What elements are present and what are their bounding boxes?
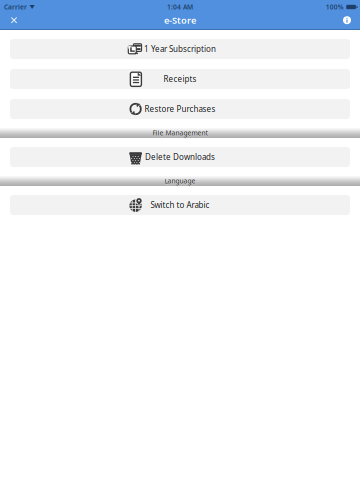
staticText: Language [164, 177, 195, 186]
staticText: Carrier [4, 3, 27, 11]
staticText: 1 Year Subscription [144, 44, 216, 54]
button[interactable]: 1 Year Subscription [10, 39, 350, 59]
staticText: Restore Purchases [144, 104, 215, 114]
button[interactable]: Receipts [10, 69, 350, 89]
staticText: e-Store [164, 14, 196, 26]
staticText: 100% [326, 3, 344, 11]
button[interactable]: Delete Downloads [10, 147, 350, 167]
staticText: File Management [152, 129, 207, 137]
staticText: File Management [152, 129, 207, 138]
staticText: Switch to Arabic [150, 200, 209, 210]
button[interactable]: Restore Purchases [10, 99, 350, 119]
staticText: Delete Downloads [145, 152, 215, 162]
staticText: Receipts [163, 74, 196, 84]
button[interactable]: About [336, 12, 358, 28]
staticText: 1:04 AM [167, 3, 193, 11]
button[interactable]: Switch to Arabic [10, 195, 350, 215]
button[interactable]: Close [3, 12, 25, 28]
staticText: Language [164, 177, 195, 185]
